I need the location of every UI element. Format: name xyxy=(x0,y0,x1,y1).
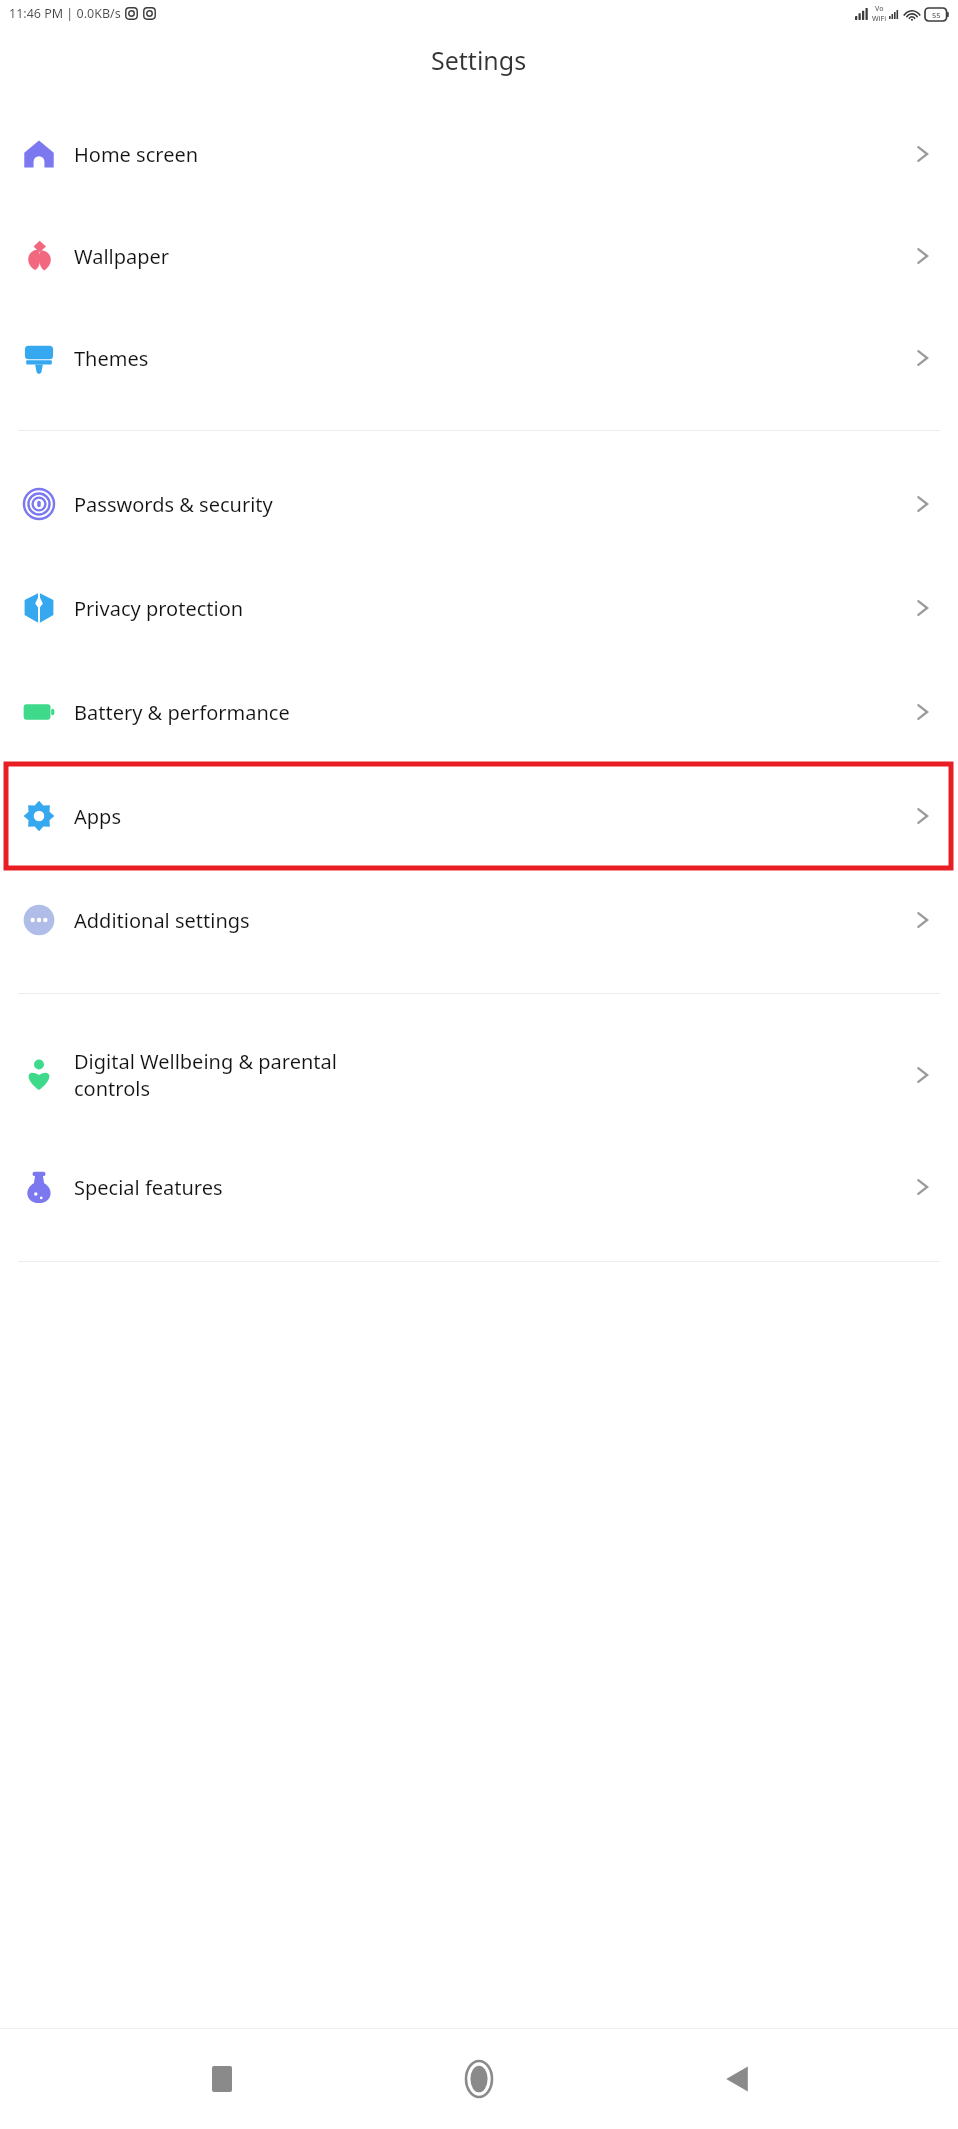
staticText: Settings xyxy=(431,43,527,77)
staticText: Additional settings xyxy=(74,907,250,934)
button[interactable]: Apps xyxy=(0,764,958,868)
button[interactable]: Back xyxy=(701,2043,773,2115)
staticText: Apps xyxy=(74,803,121,830)
staticText: Themes xyxy=(74,345,149,372)
button[interactable]: Digital Wellbeing & parental controls xyxy=(0,1015,958,1135)
staticText: Home screen xyxy=(74,141,199,168)
staticText: Wallpaper xyxy=(74,243,170,270)
button[interactable]: Wallpaper xyxy=(0,205,958,307)
button[interactable]: Passwords & security xyxy=(0,452,958,556)
button[interactable]: Recents xyxy=(186,2043,258,2115)
button[interactable]: Additional settings xyxy=(0,868,958,972)
button[interactable]: Themes xyxy=(0,307,958,409)
button[interactable]: Special features xyxy=(0,1135,958,1239)
staticText: 55 xyxy=(932,10,941,20)
staticText: Digital Wellbeing & parental controls xyxy=(74,1048,337,1102)
staticText: Vo xyxy=(875,4,884,14)
staticText: WiFi xyxy=(872,14,887,24)
staticText: Battery & performance xyxy=(74,699,290,726)
staticText: Privacy protection xyxy=(74,595,244,622)
button[interactable]: Battery & performance xyxy=(0,660,958,764)
staticText: 11:46 PM | 0.0KB/s xyxy=(9,5,121,22)
button[interactable]: Home screen xyxy=(0,103,958,205)
staticText: Passwords & security xyxy=(74,491,273,518)
staticText: Special features xyxy=(74,1174,223,1201)
button[interactable]: Privacy protection xyxy=(0,556,958,660)
button[interactable]: Home xyxy=(443,2043,515,2115)
